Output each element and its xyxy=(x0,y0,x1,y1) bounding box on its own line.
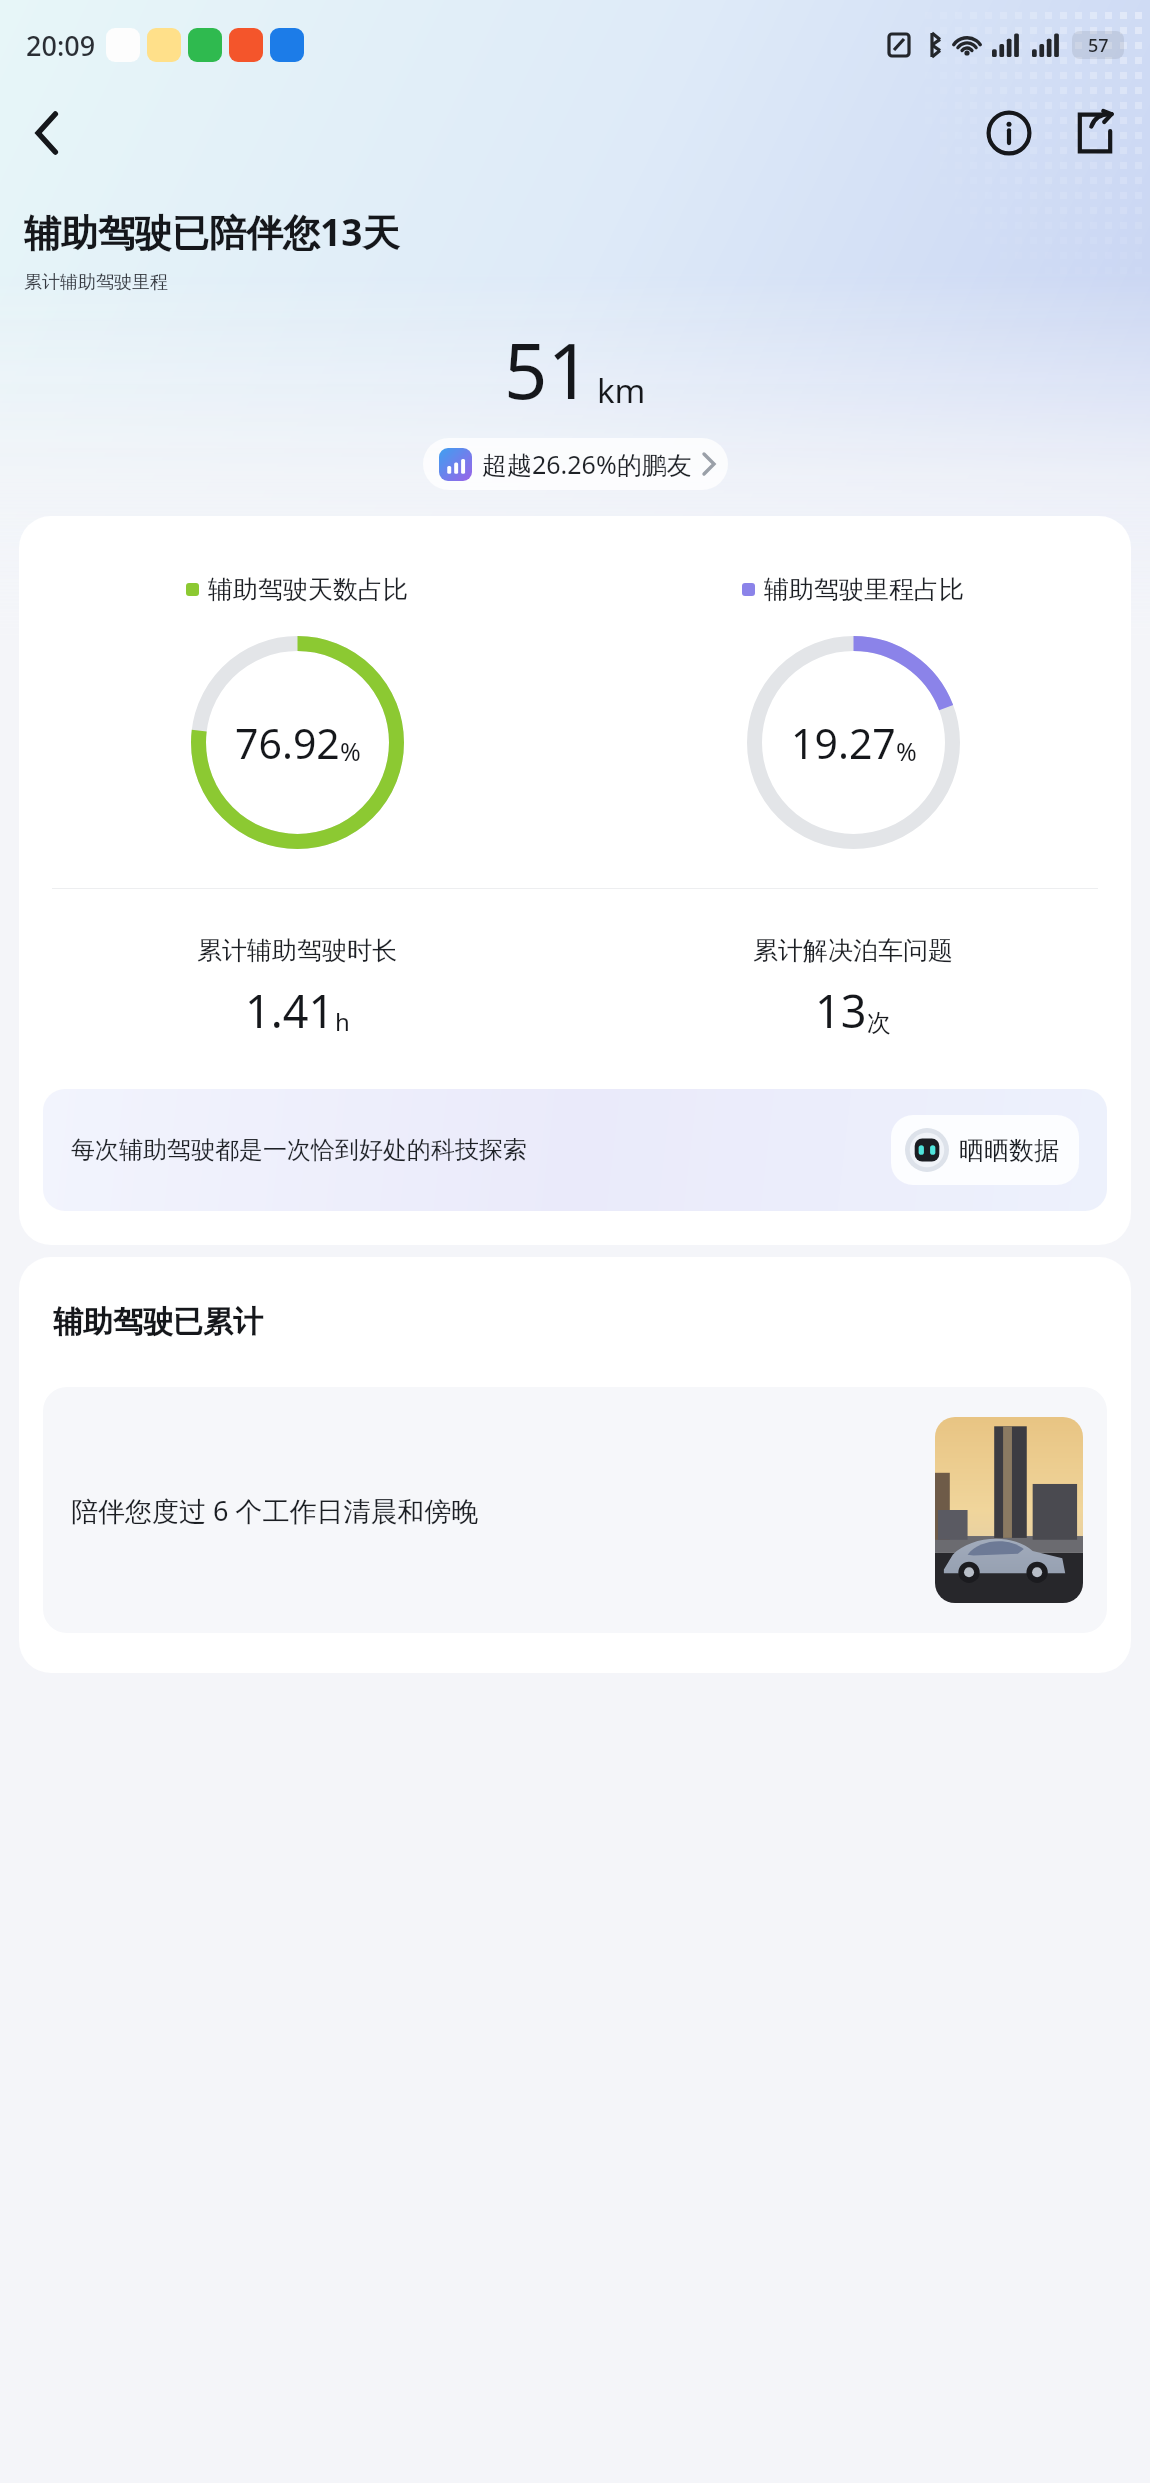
button[interactable]: Share xyxy=(1058,96,1132,170)
staticText: 辅助驾驶已陪伴您13天 xyxy=(24,206,400,257)
staticText: 19.27 xyxy=(791,715,896,771)
button[interactable]: 陪伴您度过 6 个工作日清晨和傍晚 xyxy=(43,1387,1107,1633)
staticText: 累计辅助驾驶时长 xyxy=(197,935,397,966)
staticText: 陪伴您度过 6 个工作日清晨和傍晚 xyxy=(71,1492,917,1529)
staticText: 辅助驾驶已累计 xyxy=(53,1303,263,1341)
staticText: h xyxy=(335,1005,350,1038)
button[interactable]: 超越26.26%的鹏友 xyxy=(423,438,728,490)
staticText: 20:09 xyxy=(26,27,96,64)
staticText: 辅助驾驶天数占比 xyxy=(208,574,408,605)
staticText: 57 xyxy=(1088,33,1109,58)
staticText: 76.92 xyxy=(235,715,340,771)
staticText: 每次辅助驾驶都是一次恰到好处的科技探索 xyxy=(71,1135,873,1165)
staticText: % xyxy=(340,734,361,768)
staticText: 晒晒数据 xyxy=(959,1135,1059,1166)
staticText: 超越26.26%的鹏友 xyxy=(482,447,692,481)
staticText: 累计辅助驾驶里程 xyxy=(24,271,168,294)
button[interactable]: 晒晒数据 xyxy=(891,1115,1079,1185)
staticText: km xyxy=(597,368,646,413)
button[interactable]: Back xyxy=(10,96,84,170)
staticText: 51 xyxy=(504,318,591,422)
staticText: 累计解决泊车问题 xyxy=(753,935,953,966)
staticText: 1.41 xyxy=(245,980,335,1041)
staticText: 辅助驾驶里程占比 xyxy=(764,574,964,605)
staticText: 13 xyxy=(815,980,867,1041)
button[interactable]: Info xyxy=(972,96,1046,170)
staticText: % xyxy=(896,734,917,768)
staticText: 次 xyxy=(867,1008,891,1038)
